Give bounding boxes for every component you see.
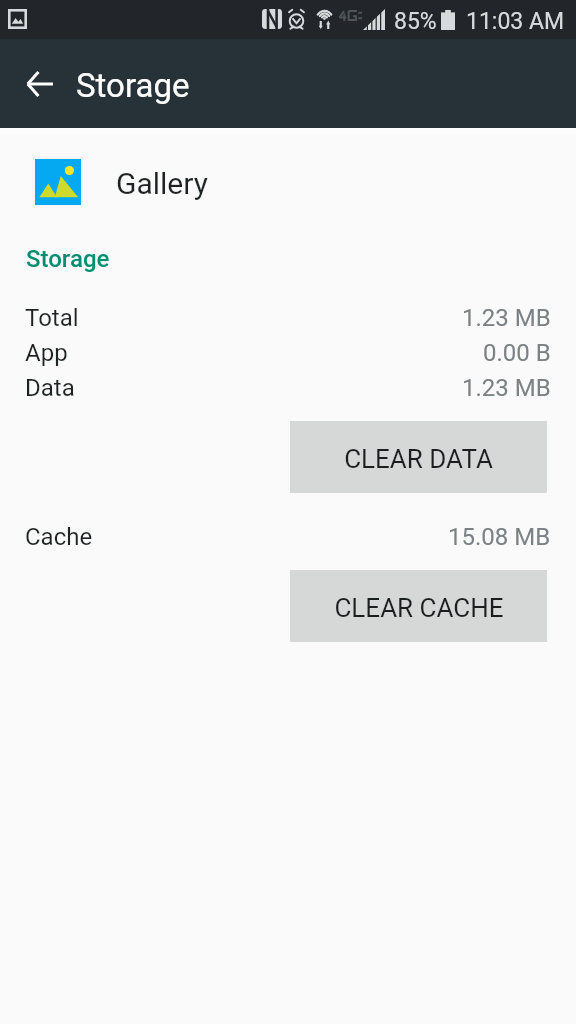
staticText: 0.00 B	[483, 339, 551, 367]
staticText: Gallery	[116, 166, 208, 201]
staticText: CLEAR CACHE	[334, 593, 504, 623]
staticText: CLEAR DATA	[344, 444, 493, 474]
staticText: 1.23 MB	[462, 304, 551, 332]
staticText: Cache	[25, 523, 93, 551]
button[interactable]: Navigate up	[12, 56, 67, 111]
staticText: Total	[25, 304, 79, 332]
button[interactable]: CLEAR CACHE	[290, 570, 547, 642]
button[interactable]: CLEAR DATA	[290, 421, 547, 493]
staticText: 1.23 MB	[462, 374, 551, 402]
staticText: Data	[25, 374, 75, 402]
staticText: 11:03 AM	[466, 8, 565, 35]
staticText: Storage	[26, 245, 110, 273]
staticText: App	[25, 339, 68, 367]
staticText: 85%	[394, 8, 437, 35]
staticText: 15.08 MB	[448, 523, 551, 551]
staticText: Storage	[76, 66, 190, 105]
